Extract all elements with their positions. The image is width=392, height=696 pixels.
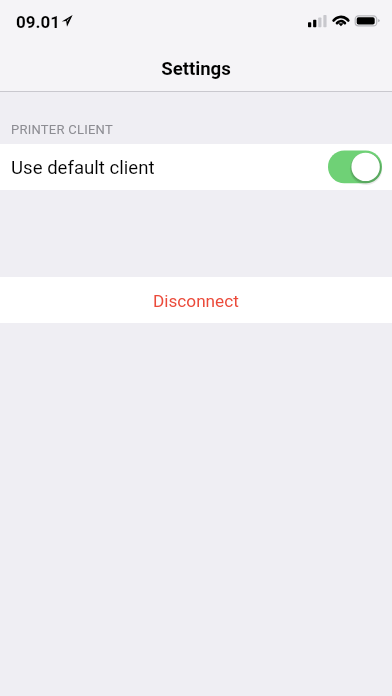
staticText: Settings [0, 58, 392, 80]
button[interactable]: Use default client [0, 144, 392, 190]
staticText: Disconnect [153, 291, 239, 311]
staticText: Use default client [11, 157, 155, 179]
button[interactable]: Disconnect [0, 277, 392, 323]
staticText: PRINTER CLIENT [11, 122, 113, 137]
button[interactable]: Use default client toggle [328, 150, 384, 186]
staticText: 09.01 [16, 12, 60, 32]
